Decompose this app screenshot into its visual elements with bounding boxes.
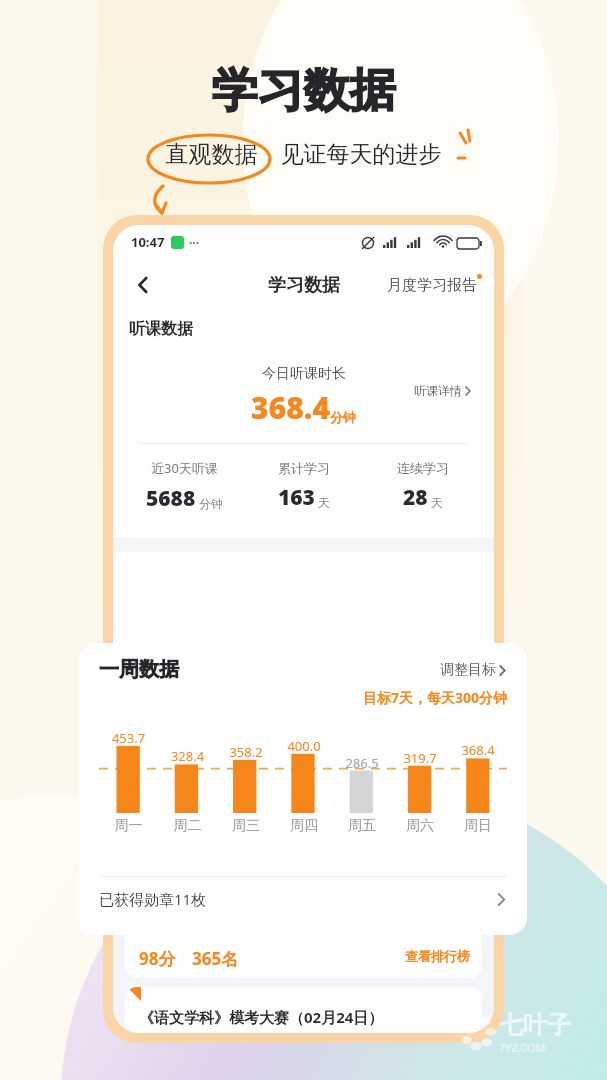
staticText: 328.4	[158, 747, 217, 765]
staticText: 5688	[146, 484, 196, 513]
button[interactable]: 98分	[125, 926, 482, 978]
staticText: 周二	[158, 817, 217, 835]
staticText: 目标7天，每天300分钟	[99, 688, 507, 707]
staticText: 直观数据，见证每天的进步	[0, 140, 607, 169]
staticText: 368.4	[449, 741, 507, 759]
staticText: 358.2	[217, 743, 275, 761]
staticText: 319.7	[391, 749, 449, 767]
staticText: 368.4	[251, 387, 330, 428]
staticText: 286.5	[333, 754, 391, 772]
staticText: 周五	[333, 817, 391, 835]
staticText: 28	[403, 483, 428, 512]
staticText: 周四	[275, 817, 333, 835]
button[interactable]: 已获得勋章11枚	[99, 877, 507, 921]
staticText: 163	[278, 483, 315, 512]
staticText: 天	[431, 495, 443, 510]
button[interactable]: 《语文学科》模考大赛（02月24日）	[125, 987, 482, 1033]
button[interactable]: 听课详情	[414, 383, 472, 398]
staticText: 近30天听课	[151, 459, 218, 477]
staticText: 周六	[391, 817, 449, 835]
staticText: 一周数据	[99, 657, 179, 682]
staticText: 查看排行榜	[405, 948, 470, 964]
staticText: 365名	[192, 947, 239, 970]
staticText: 分钟	[330, 409, 356, 425]
staticText: 听课详情	[414, 383, 462, 398]
button[interactable]: 今日听课时长	[125, 351, 482, 528]
staticText: 天	[318, 495, 330, 510]
staticText: 周日	[449, 817, 507, 835]
button[interactable]: Back	[121, 263, 165, 307]
staticText: 453.7	[99, 729, 158, 747]
staticText: 听课数据	[129, 319, 193, 339]
staticText: 月度学习报告	[387, 276, 477, 295]
staticText: 400.0	[275, 737, 333, 755]
staticText: 分钟	[199, 496, 223, 511]
staticText: 10:47	[131, 233, 165, 251]
staticText: 连续学习	[397, 460, 449, 476]
staticText: 98分	[139, 947, 176, 970]
staticText: 已获得勋章11枚	[99, 889, 207, 909]
staticText: 学习数据	[268, 274, 340, 297]
staticText: ···	[189, 234, 200, 250]
button[interactable]: 一周数据	[79, 643, 527, 935]
staticText: 周一	[99, 817, 158, 835]
staticText: 七叶子	[499, 1010, 571, 1040]
staticText: 《语文学科》模考大赛（02月24日）	[139, 1007, 384, 1027]
button[interactable]: 月度学习报告	[387, 276, 482, 295]
staticText: 学习数据	[0, 62, 607, 120]
button[interactable]: 调整目标	[440, 661, 507, 679]
staticText: 累计学习	[278, 460, 330, 476]
staticText: 调整目标	[440, 661, 496, 679]
staticText: 周三	[217, 817, 275, 835]
staticText: 7YZ.COM	[499, 1040, 546, 1055]
staticText: 今日听课时长	[262, 365, 346, 383]
